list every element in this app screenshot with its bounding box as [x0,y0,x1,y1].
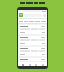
button[interactable]: Tab 3 [34,63,37,66]
button[interactable]: App icon [19,13,23,17]
button[interactable] [19,36,46,45]
button[interactable]: Tab 1 [21,63,24,66]
button[interactable]: Tab 2 [28,63,31,66]
button[interactable] [19,25,46,34]
button[interactable] [19,47,46,56]
button[interactable]: Account [43,14,46,17]
button[interactable]: Tab 4 [41,63,44,66]
button[interactable] [19,58,46,61]
